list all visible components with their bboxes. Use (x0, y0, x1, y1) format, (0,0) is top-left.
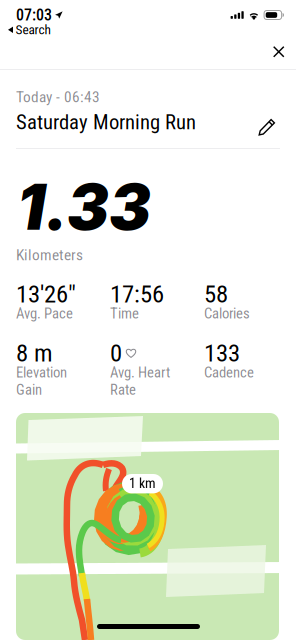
staticText: Today - 06:43 (16, 88, 100, 106)
staticText: 58 (204, 279, 228, 308)
staticText: 07:03 (16, 6, 52, 24)
staticText: 1.33 (17, 169, 151, 245)
staticText: Calories (204, 305, 250, 322)
staticText: 1 km (129, 475, 156, 492)
button[interactable]: Close (264, 37, 293, 66)
button[interactable]: Edit workout name (253, 113, 281, 141)
button[interactable]: Search (1, 19, 57, 40)
staticText: 133 (204, 338, 240, 367)
staticText: 13'26" (16, 279, 76, 308)
staticText: Avg. Pace (16, 305, 73, 322)
staticText: Elevation Gain (16, 364, 67, 398)
staticText: 0 (110, 338, 122, 367)
staticText: Kilometers (16, 246, 83, 264)
staticText: 17:56 (110, 279, 164, 308)
staticText: Cadence (204, 364, 254, 381)
staticText: Time (110, 305, 139, 322)
staticText: 8 m (16, 338, 53, 367)
staticText: Saturday Morning Run (16, 110, 196, 134)
staticText: Search (15, 22, 50, 38)
staticText: Avg. Heart Rate (110, 364, 170, 398)
